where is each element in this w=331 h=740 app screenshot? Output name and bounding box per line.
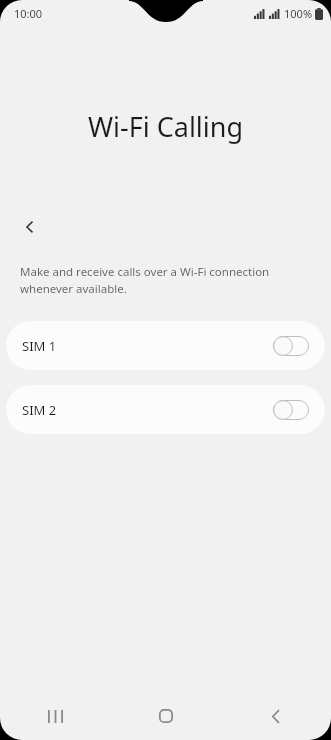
button[interactable]: Home bbox=[111, 692, 221, 740]
button[interactable]: Back bbox=[10, 207, 50, 247]
button[interactable]: Back bbox=[221, 692, 331, 740]
other: Battery 100 percent bbox=[315, 8, 323, 20]
staticText: Wi-Fi Calling bbox=[0, 108, 331, 145]
button[interactable]: SIM 2 bbox=[6, 385, 325, 434]
button[interactable]: Toggle bbox=[273, 400, 309, 420]
staticText: SIM 1 bbox=[22, 337, 57, 355]
staticText: 100% bbox=[284, 6, 313, 21]
other: Signal strength bbox=[254, 9, 265, 19]
staticText: SIM 2 bbox=[22, 401, 57, 419]
staticText: Make and receive calls over a Wi-Fi conn… bbox=[20, 264, 270, 297]
button[interactable]: SIM 1 bbox=[6, 321, 325, 370]
staticText: 10:00 bbox=[14, 6, 43, 21]
other: Signal strength bbox=[269, 9, 280, 19]
button[interactable]: Toggle bbox=[273, 336, 309, 356]
button[interactable]: Recents bbox=[0, 692, 111, 740]
